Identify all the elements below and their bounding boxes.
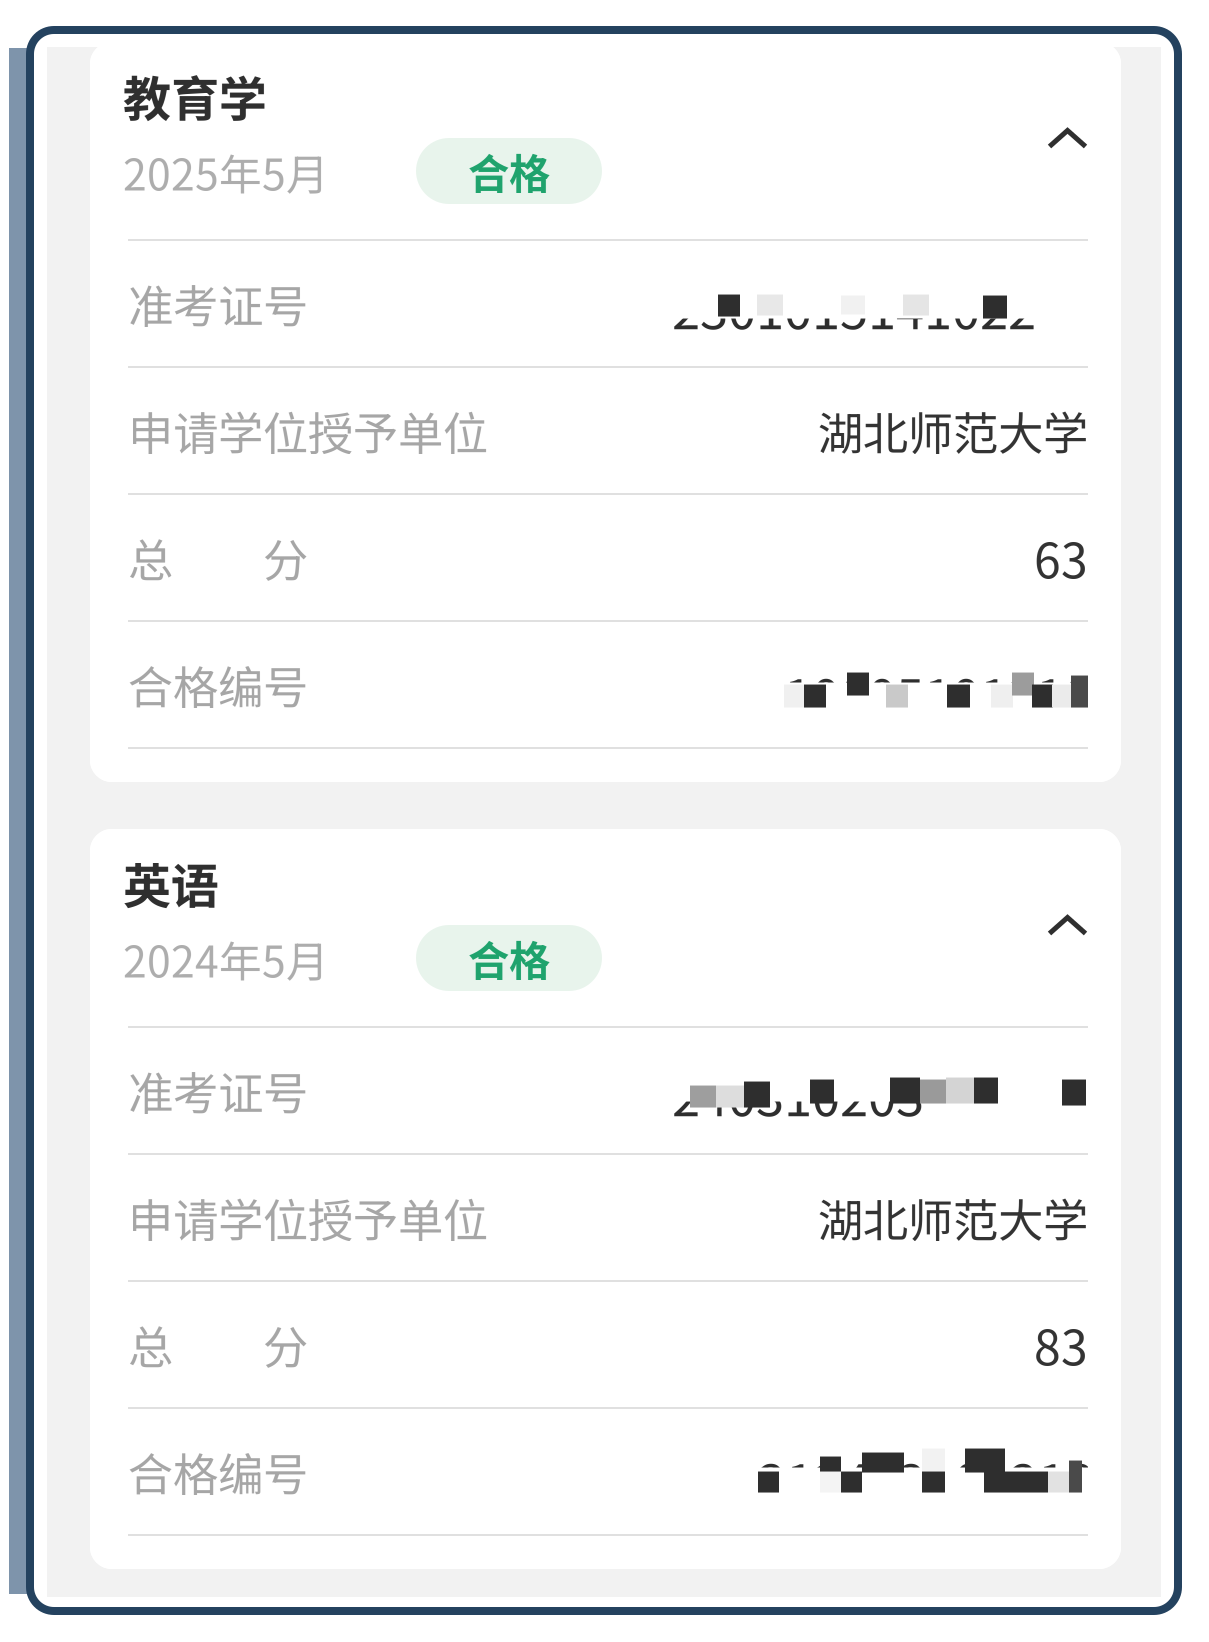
staticText: 合格编号 <box>128 1439 308 1504</box>
button[interactable]: 英语 2024年5月 合格 收起 <box>90 829 1121 1026</box>
staticText: 2025年5月 <box>123 141 329 203</box>
staticText: 213402104218 <box>758 1442 1094 1516</box>
staticText: 2024年5月 <box>123 928 329 990</box>
staticText: 准考证号 <box>128 271 308 336</box>
staticText: 申请学位授予单位 <box>128 398 488 463</box>
staticText: 湖北师范大学 <box>818 1185 1088 1250</box>
staticText: 63 <box>1034 523 1088 592</box>
staticText: 总 分 <box>128 1312 308 1377</box>
staticText: 英语 <box>123 848 219 917</box>
staticText: 湖北师范大学 <box>818 398 1088 463</box>
staticText: 240310203 <box>672 1057 934 1131</box>
staticText: 合格 <box>468 141 550 201</box>
staticText: 2301015141022 <box>672 270 1036 344</box>
staticText: 101051013105 <box>784 657 1120 731</box>
staticText: 83 <box>1034 1310 1088 1379</box>
staticText: 申请学位授予单位 <box>128 1185 488 1250</box>
button[interactable]: 教育学 2025年5月 合格 收起 <box>90 42 1121 239</box>
staticText: 总 分 <box>128 525 308 590</box>
staticText: 教育学 <box>123 61 267 130</box>
staticText: 合格 <box>468 928 550 988</box>
staticText: 合格编号 <box>128 652 308 717</box>
staticText: 准考证号 <box>128 1058 308 1123</box>
